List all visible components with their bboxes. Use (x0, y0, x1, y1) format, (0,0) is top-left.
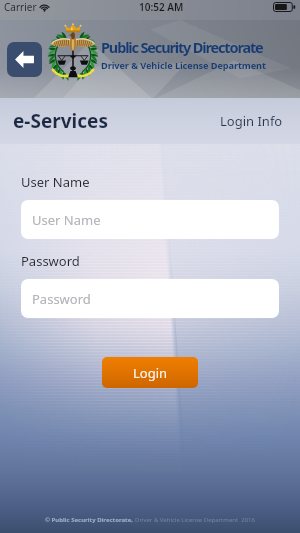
staticText: User Name (32, 211, 101, 229)
staticText: Password (21, 252, 80, 270)
staticText: 10:52 AM (139, 0, 184, 14)
staticText: User Name (21, 173, 90, 191)
staticText: Driver & Vehicle License Department 2016 (135, 516, 255, 524)
button[interactable]: Login Info (216, 104, 287, 138)
staticText: e-Services (13, 108, 108, 134)
staticText: Password (32, 290, 91, 308)
button[interactable]: Login (102, 357, 198, 388)
staticText: Login Info (220, 112, 283, 130)
button[interactable]: Password (21, 279, 279, 318)
staticText: © Public Security Directorate, (45, 516, 135, 524)
staticText: Carrier (4, 0, 37, 14)
staticText: Public Security Directorate (101, 37, 263, 57)
staticText: Driver & Vehicle License Department (101, 59, 266, 72)
button[interactable]: Back (7, 42, 42, 77)
button[interactable]: User Name (21, 200, 279, 239)
staticText: Login (133, 364, 168, 382)
